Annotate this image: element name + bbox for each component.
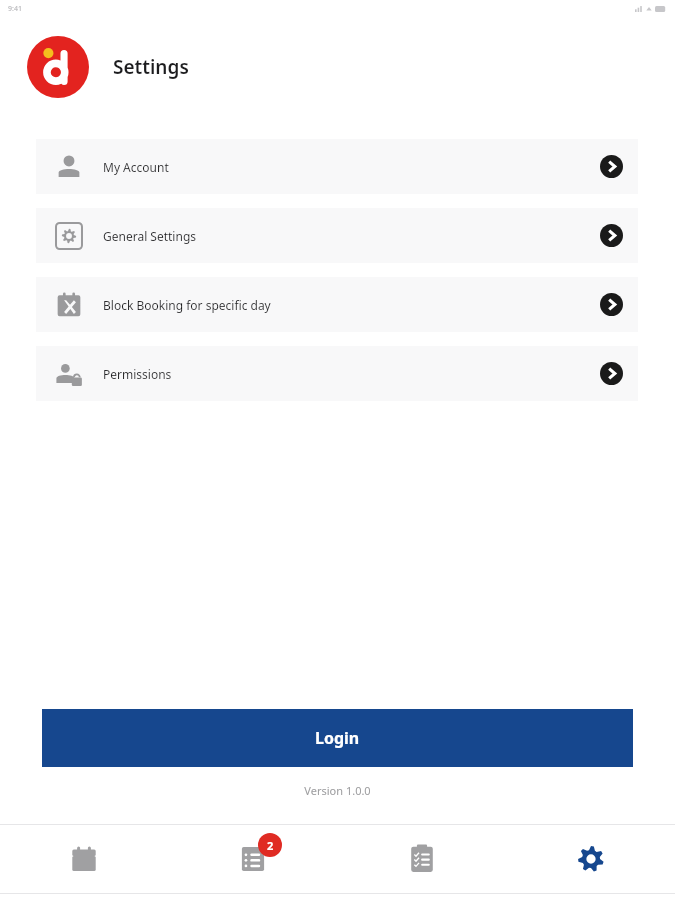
staticText: Block Booking for specific day: [103, 297, 600, 313]
button[interactable]: Calendar: [0, 825, 168, 893]
staticText: My Account: [103, 159, 600, 175]
staticText: 2: [267, 838, 274, 853]
staticText: General Settings: [103, 228, 600, 244]
button[interactable]: My Account: [36, 139, 638, 194]
button[interactable]: Bookings: [168, 825, 337, 893]
staticText: Permissions: [103, 366, 600, 382]
button[interactable]: Block Booking for specific day: [36, 277, 638, 332]
button[interactable]: Settings: [506, 825, 675, 893]
staticText: Version 1.0.0: [0, 783, 675, 798]
staticText: Login: [315, 727, 360, 749]
button[interactable]: Login: [42, 709, 633, 767]
staticText: Settings: [113, 54, 189, 80]
button[interactable]: Tasks: [337, 825, 506, 893]
staticText: 9:41: [8, 4, 22, 14]
button[interactable]: Permissions: [36, 346, 638, 401]
button[interactable]: General Settings: [36, 208, 638, 263]
